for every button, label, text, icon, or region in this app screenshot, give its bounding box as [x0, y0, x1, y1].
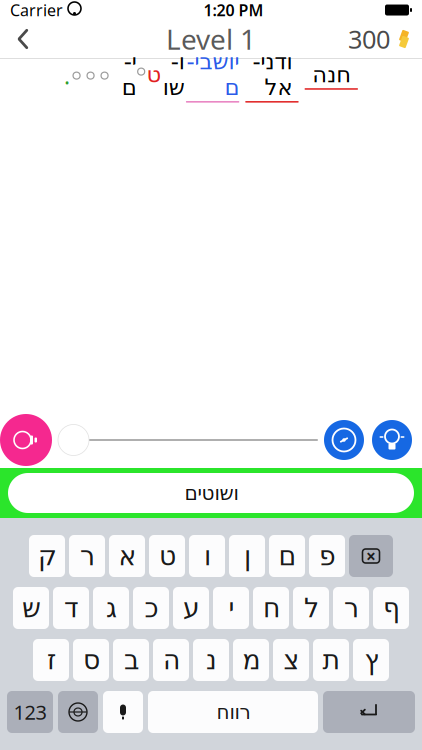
- staticText: ק: [37, 541, 56, 571]
- button[interactable]: א: [109, 535, 145, 577]
- button[interactable]: ז: [33, 639, 69, 681]
- button[interactable]: Listen: [0, 414, 52, 466]
- staticText: ודניאל: [252, 49, 292, 100]
- staticText: ט: [158, 541, 175, 571]
- button[interactable]: Hint: [372, 420, 412, 460]
- staticText: רווח: [216, 701, 250, 723]
- staticText: ג: [105, 593, 116, 623]
- staticText: ושוטים: [184, 482, 238, 504]
- button[interactable]: 300 energy: [338, 20, 422, 58]
- button[interactable]: נ: [193, 639, 229, 681]
- button[interactable]: רווח: [148, 691, 318, 733]
- staticText: נ: [205, 645, 216, 675]
- staticText: ×: [366, 544, 376, 567]
- button[interactable]: Return: [323, 691, 415, 733]
- button[interactable]: Backspace: [349, 535, 393, 577]
- staticText: ושו: [162, 49, 184, 100]
- staticText: ן: [243, 541, 250, 571]
- button[interactable]: ן: [229, 535, 265, 577]
- button[interactable]: ע: [173, 587, 209, 629]
- staticText: כ: [144, 593, 158, 623]
- button[interactable]: ח: [253, 587, 289, 629]
- staticText: ו: [203, 541, 210, 571]
- staticText: 1:20 PM: [203, 0, 263, 21]
- button[interactable]: Speed slider: [58, 424, 89, 455]
- button[interactable]: ו: [189, 535, 225, 577]
- staticText: ף: [382, 593, 399, 623]
- button[interactable]: Switch keyboard: [58, 691, 98, 733]
- button[interactable]: ף: [373, 587, 409, 629]
- staticText: ב: [123, 645, 138, 675]
- staticText: ם: [278, 541, 296, 571]
- staticText: מ: [242, 645, 260, 675]
- button[interactable]: ר: [69, 535, 105, 577]
- button[interactable]: מ: [233, 639, 269, 681]
- staticText: 300: [348, 22, 390, 56]
- staticText: יושבים: [186, 49, 239, 100]
- button[interactable]: ש: [13, 587, 49, 629]
- staticText: Level 1: [166, 20, 256, 58]
- button[interactable]: ב: [113, 639, 149, 681]
- staticText: ת: [322, 645, 340, 675]
- button[interactable]: ס: [73, 639, 109, 681]
- staticText: ח: [262, 593, 279, 623]
- staticText: 123: [13, 699, 46, 725]
- button[interactable]: ת: [313, 639, 349, 681]
- staticText: Carrier: [10, 0, 63, 21]
- button[interactable]: ג: [93, 587, 129, 629]
- staticText: י: [228, 593, 234, 623]
- staticText: ע: [182, 593, 199, 623]
- button[interactable]: צ: [273, 639, 309, 681]
- button[interactable]: ר: [333, 587, 369, 629]
- staticText: ה: [162, 645, 179, 675]
- staticText: ל: [303, 593, 318, 623]
- staticText: ז: [46, 645, 55, 675]
- button[interactable]: Playback speed: [324, 420, 364, 460]
- button[interactable]: ה: [153, 639, 189, 681]
- button[interactable]: ק: [29, 535, 65, 577]
- button[interactable]: ץ: [353, 639, 389, 681]
- staticText: ד: [63, 593, 78, 623]
- button[interactable]: Back: [0, 20, 46, 58]
- staticText: ט: [146, 61, 161, 87]
- staticText: ש: [21, 593, 40, 623]
- button[interactable]: ל: [293, 587, 329, 629]
- button[interactable]: ט: [149, 535, 185, 577]
- button[interactable]: 123: [7, 691, 53, 733]
- staticText: א: [118, 541, 136, 571]
- button[interactable]: י: [213, 587, 249, 629]
- button[interactable]: ושוטים: [0, 468, 422, 518]
- button[interactable]: כ: [133, 587, 169, 629]
- staticText: פ: [318, 541, 335, 571]
- staticText: ס: [82, 645, 99, 675]
- staticText: .: [64, 60, 70, 91]
- staticText: ר: [79, 541, 94, 571]
- button[interactable]: פ: [309, 535, 345, 577]
- staticText: צ: [283, 645, 299, 675]
- staticText: ים: [121, 49, 136, 100]
- button[interactable]: Dictate: [103, 691, 143, 733]
- button[interactable]: ד: [53, 587, 89, 629]
- staticText: ץ: [364, 645, 378, 675]
- staticText: חנה: [312, 61, 351, 87]
- staticText: ר: [343, 593, 358, 623]
- button[interactable]: ם: [269, 535, 305, 577]
